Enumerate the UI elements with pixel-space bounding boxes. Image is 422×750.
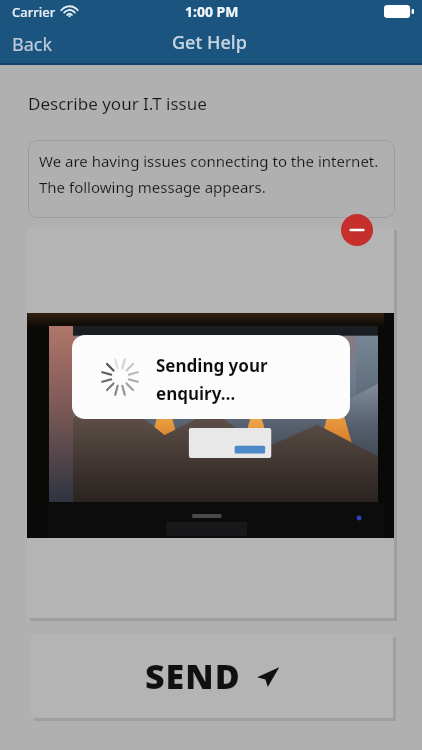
staticText: enquiry… <box>156 382 236 405</box>
button[interactable] <box>27 227 394 618</box>
staticText: SEND <box>145 653 241 699</box>
button[interactable]: SEND <box>31 634 393 718</box>
staticText: Get Help <box>172 30 247 55</box>
button[interactable]: Back <box>12 32 53 57</box>
button[interactable]: Remove image <box>341 214 373 246</box>
staticText: The following message appears. <box>39 177 266 197</box>
staticText: Describe your I.T issue <box>28 92 207 115</box>
staticText: 1:00 PM <box>185 2 239 21</box>
button[interactable]: We are having issues connecting to the i… <box>28 140 395 218</box>
staticText: We are having issues connecting to the i… <box>39 151 379 171</box>
staticText: Back <box>12 32 53 57</box>
staticText: Sending your <box>156 354 268 377</box>
staticText: Carrier <box>12 3 56 21</box>
